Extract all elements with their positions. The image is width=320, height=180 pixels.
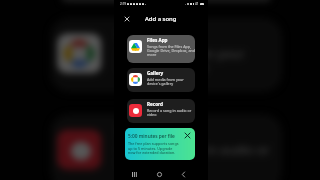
staticText: Add media from your device's gallery (118, 46, 245, 74)
staticText: Add a song (145, 15, 177, 23)
button[interactable]: Record (50, 114, 282, 180)
staticText: Record (147, 101, 163, 107)
staticText: Record a song in audio or video (118, 142, 272, 170)
button[interactable]: Close (122, 14, 132, 24)
staticText: The free plan supports songs up to 5 min… (128, 141, 179, 155)
staticText: Record a song in audio or video (147, 108, 192, 117)
button[interactable]: Files App (127, 35, 195, 63)
staticText: 41 (195, 2, 199, 6)
staticText: Songs from the Files App, Google Drive, … (147, 44, 195, 57)
staticText: Gallery (147, 70, 164, 76)
staticText: 5:00 minutes per file (128, 133, 175, 140)
staticText: Files App (147, 37, 168, 43)
button[interactable]: Recent apps (128, 168, 140, 180)
button[interactable]: Record (127, 99, 195, 123)
staticText: Record (118, 120, 173, 139)
button[interactable]: Home (153, 168, 165, 180)
button[interactable]: Gallery (127, 68, 195, 92)
button[interactable]: Dismiss (182, 130, 192, 140)
button[interactable]: Back (177, 168, 189, 180)
staticText: Add media from your device's gallery (147, 77, 184, 86)
button[interactable]: Files App (50, 0, 282, 2)
staticText: 2:19 (120, 2, 126, 6)
staticText: Gallery (118, 24, 176, 43)
button[interactable]: Gallery (50, 18, 282, 92)
